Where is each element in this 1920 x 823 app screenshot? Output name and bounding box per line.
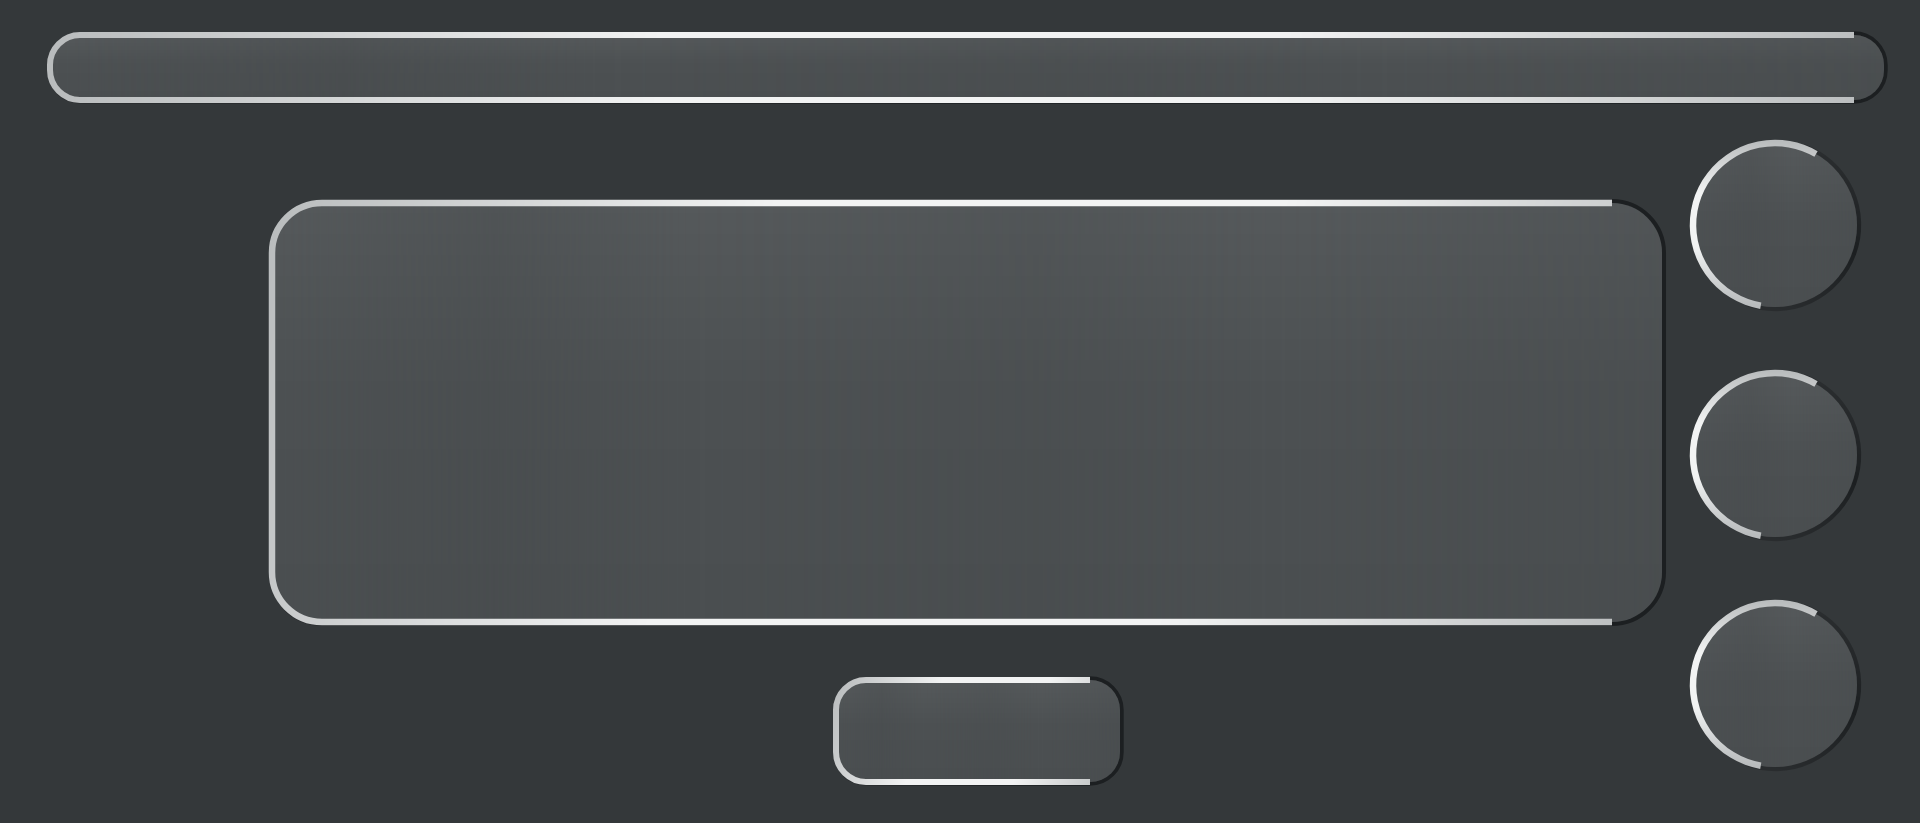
button[interactable]: Option three [1693, 603, 1857, 767]
button[interactable]: Option one [1693, 143, 1857, 307]
button[interactable]: Action button [836, 680, 1120, 782]
button[interactable]: Main panel [272, 203, 1662, 622]
button[interactable]: Top bar [0, 0, 1920, 823]
button[interactable]: Top bar [50, 35, 1884, 100]
button[interactable]: Option two [1693, 373, 1857, 537]
